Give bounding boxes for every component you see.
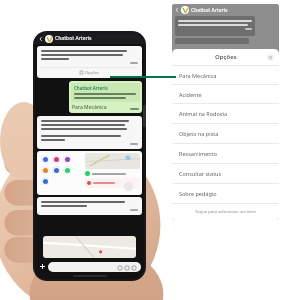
button[interactable]: Mic <box>130 264 137 271</box>
staticText: Chatbot Arteris <box>191 7 228 14</box>
staticText: Acidente <box>179 91 202 98</box>
button[interactable]: Chatbot Arteris <box>69 81 142 113</box>
staticText: Toque para selecionar um item <box>195 209 256 215</box>
button[interactable] <box>37 197 142 215</box>
button[interactable]: Objeto na pista <box>172 124 279 144</box>
button[interactable]: Sticker <box>116 264 123 271</box>
staticText: Para Mecânica <box>72 104 107 111</box>
staticText: Para Mecânica <box>179 72 217 79</box>
button[interactable]: Sticker <box>48 262 141 272</box>
staticText: Consultar status <box>179 170 222 177</box>
staticText: Animal na Rodovia <box>179 110 227 117</box>
button[interactable]: Floating button <box>124 182 133 191</box>
button[interactable]: Fechar <box>267 54 274 61</box>
button[interactable]: Attach <box>38 262 47 271</box>
button[interactable]: Consultar status <box>172 164 279 184</box>
button[interactable]: Opções <box>37 46 142 78</box>
button[interactable]: Camera <box>123 264 130 271</box>
staticText: Chatbot Arteris <box>55 35 92 42</box>
staticText: Chatbot Arteris <box>74 85 108 91</box>
button[interactable]: Para Mecânica <box>172 66 279 85</box>
button[interactable]: Animal na Rodovia <box>172 104 279 124</box>
staticText: Objeto na pista <box>179 130 219 137</box>
button[interactable]: Acidente <box>172 85 279 104</box>
staticText: Opções <box>215 53 237 61</box>
button[interactable]: Back <box>38 36 44 42</box>
staticText: Ressarcimento <box>179 150 218 157</box>
staticText: Opções <box>85 70 100 75</box>
button[interactable] <box>37 151 142 195</box>
staticText: Sobre pedágio <box>179 190 217 197</box>
button[interactable]: Sobre pedágio <box>172 184 279 204</box>
button[interactable] <box>37 116 142 149</box>
button[interactable]: Ressarcimento <box>172 144 279 164</box>
